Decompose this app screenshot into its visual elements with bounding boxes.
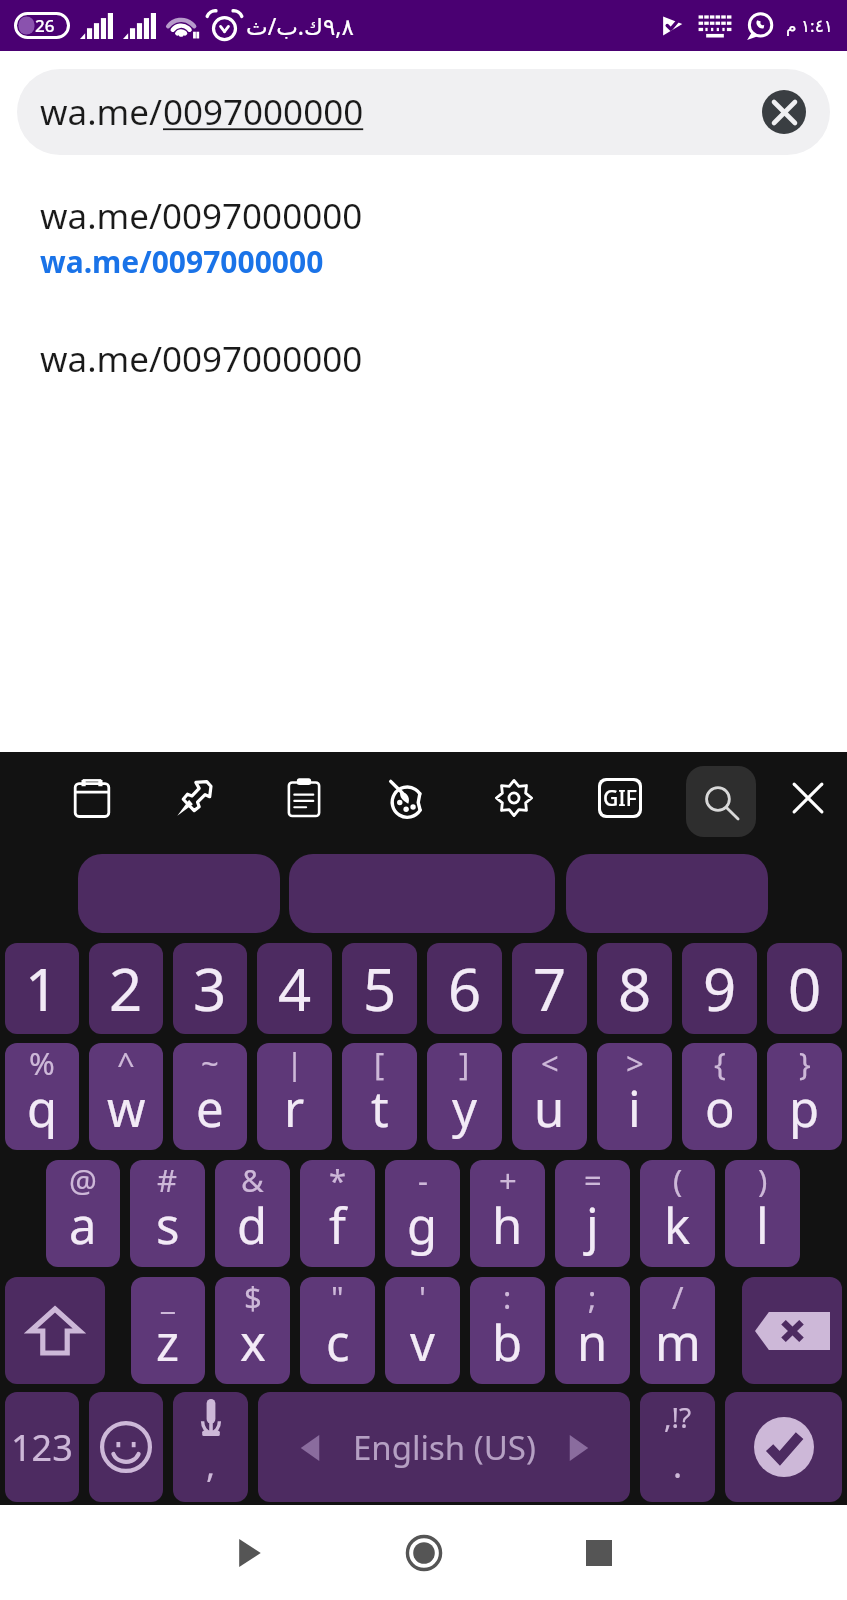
staticText: ; — [588, 1277, 597, 1318]
button[interactable]: / — [640, 1277, 715, 1384]
staticText: 9 — [703, 949, 737, 1028]
button[interactable]: % — [5, 1043, 79, 1150]
staticText: 1 — [25, 949, 59, 1028]
staticText: y — [452, 1075, 477, 1142]
button[interactable]: 8 — [597, 943, 672, 1034]
button[interactable]: 4 — [257, 943, 332, 1034]
staticText: d — [237, 1192, 268, 1259]
staticText: & — [241, 1160, 264, 1201]
staticText: 7 — [533, 949, 567, 1028]
button[interactable]: ' — [385, 1277, 460, 1384]
staticText: ~ — [201, 1043, 219, 1084]
button[interactable]: Close — [776, 766, 840, 830]
button[interactable]: ; — [555, 1277, 630, 1384]
button[interactable]: 0 — [767, 943, 842, 1034]
staticText: ] — [459, 1043, 470, 1084]
staticText: } — [799, 1043, 811, 1084]
staticText: . — [673, 1442, 683, 1488]
button[interactable]: 9 — [682, 943, 757, 1034]
button[interactable]: Backspace — [742, 1277, 842, 1384]
button[interactable]: + — [470, 1160, 545, 1267]
staticText: p — [789, 1075, 820, 1142]
button[interactable]: ,!? — [640, 1392, 715, 1502]
button[interactable]: Settings — [482, 766, 546, 830]
button[interactable]: Clear — [762, 90, 806, 134]
button[interactable] — [78, 854, 280, 933]
button[interactable]: = — [555, 1160, 630, 1267]
button[interactable]: " — [300, 1277, 375, 1384]
button[interactable]: 7 — [512, 943, 587, 1034]
button[interactable]: ^ — [89, 1043, 163, 1150]
button[interactable]: Voice input — [173, 1392, 248, 1502]
button[interactable]: & — [215, 1160, 290, 1267]
button[interactable]: ( — [640, 1160, 715, 1267]
button[interactable]: 3 — [173, 943, 247, 1034]
button[interactable]: ) — [725, 1160, 800, 1267]
staticText: / — [672, 1277, 684, 1318]
button[interactable] — [289, 854, 555, 933]
staticText: = — [584, 1160, 602, 1201]
staticText: t — [371, 1075, 389, 1142]
button[interactable]: | — [257, 1043, 332, 1150]
button[interactable] — [566, 854, 768, 933]
button[interactable]: Pin — [163, 766, 227, 830]
button[interactable]: 6 — [427, 943, 502, 1034]
button[interactable]: Emoji — [89, 1392, 163, 1502]
button[interactable]: # — [130, 1160, 205, 1267]
button[interactable]: - — [385, 1160, 460, 1267]
button[interactable]: 123 — [5, 1392, 79, 1502]
button[interactable]: < — [512, 1043, 587, 1150]
button[interactable]: [ — [342, 1043, 417, 1150]
button[interactable]: 1 — [5, 943, 79, 1034]
staticText: + — [499, 1160, 517, 1201]
button[interactable]: wa.me/ — [17, 69, 830, 155]
button[interactable]: Enter — [725, 1392, 842, 1502]
button[interactable]: _ — [131, 1277, 205, 1384]
button[interactable]: { — [682, 1043, 757, 1150]
staticText: % — [29, 1043, 55, 1084]
staticText: o — [705, 1075, 735, 1142]
staticText: 26 — [35, 14, 55, 37]
button[interactable]: Back — [204, 1508, 294, 1598]
button[interactable]: > — [597, 1043, 672, 1150]
staticText: English (US) — [353, 1425, 536, 1470]
button[interactable]: Recents — [554, 1508, 644, 1598]
staticText: v — [410, 1309, 435, 1376]
staticText: z — [156, 1309, 180, 1376]
button[interactable]: Search — [686, 766, 756, 837]
button[interactable]: Home — [379, 1508, 469, 1598]
staticText: wa.me/0097000000 — [40, 192, 363, 240]
button[interactable]: Calendar — [60, 766, 124, 830]
button[interactable]: $ — [215, 1277, 290, 1384]
button[interactable]: Clipboard — [272, 766, 336, 830]
button[interactable]: @ — [46, 1160, 120, 1267]
button[interactable]: } — [767, 1043, 842, 1150]
staticText: " — [331, 1277, 344, 1318]
staticText: < — [541, 1043, 559, 1084]
staticText: b — [492, 1309, 523, 1376]
staticText: a — [69, 1192, 97, 1259]
staticText: > — [626, 1043, 644, 1084]
staticText: wa.me/0097000000 — [40, 241, 324, 282]
staticText: q — [27, 1075, 58, 1142]
staticText: , — [206, 1442, 216, 1488]
staticText: - — [418, 1160, 428, 1201]
button[interactable]: * — [300, 1160, 375, 1267]
button[interactable]: Shift — [5, 1277, 105, 1384]
staticText: 2 — [109, 949, 143, 1028]
button[interactable]: English (US) — [258, 1392, 630, 1502]
staticText: ' — [419, 1277, 426, 1318]
staticText: { — [714, 1043, 726, 1084]
staticText: x — [240, 1309, 266, 1376]
button[interactable]: 5 — [342, 943, 417, 1034]
button[interactable]: Theme — [377, 766, 441, 830]
staticText: g — [407, 1192, 438, 1259]
button[interactable]: ] — [427, 1043, 502, 1150]
staticText: wa.me/ — [40, 88, 163, 136]
button[interactable]: ~ — [173, 1043, 247, 1150]
staticText: 3 — [193, 949, 227, 1028]
button[interactable]: : — [470, 1277, 545, 1384]
staticText: r — [284, 1075, 305, 1142]
button[interactable]: GIF — [588, 766, 652, 830]
button[interactable]: 2 — [89, 943, 163, 1034]
